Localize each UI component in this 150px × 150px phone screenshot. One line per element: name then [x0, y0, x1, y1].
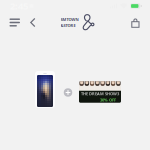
button[interactable]: Back	[27, 14, 39, 31]
button[interactable]: Menu	[0, 14, 23, 31]
staticText: 30% OFF	[100, 97, 116, 102]
staticText: &STORE	[61, 23, 76, 28]
staticText: SMTOWN	[61, 17, 79, 22]
staticText: THE DREAM SHOW3	[81, 91, 119, 96]
button[interactable]: Shopping bag	[128, 14, 150, 31]
button[interactable]: Add	[63, 87, 73, 97]
